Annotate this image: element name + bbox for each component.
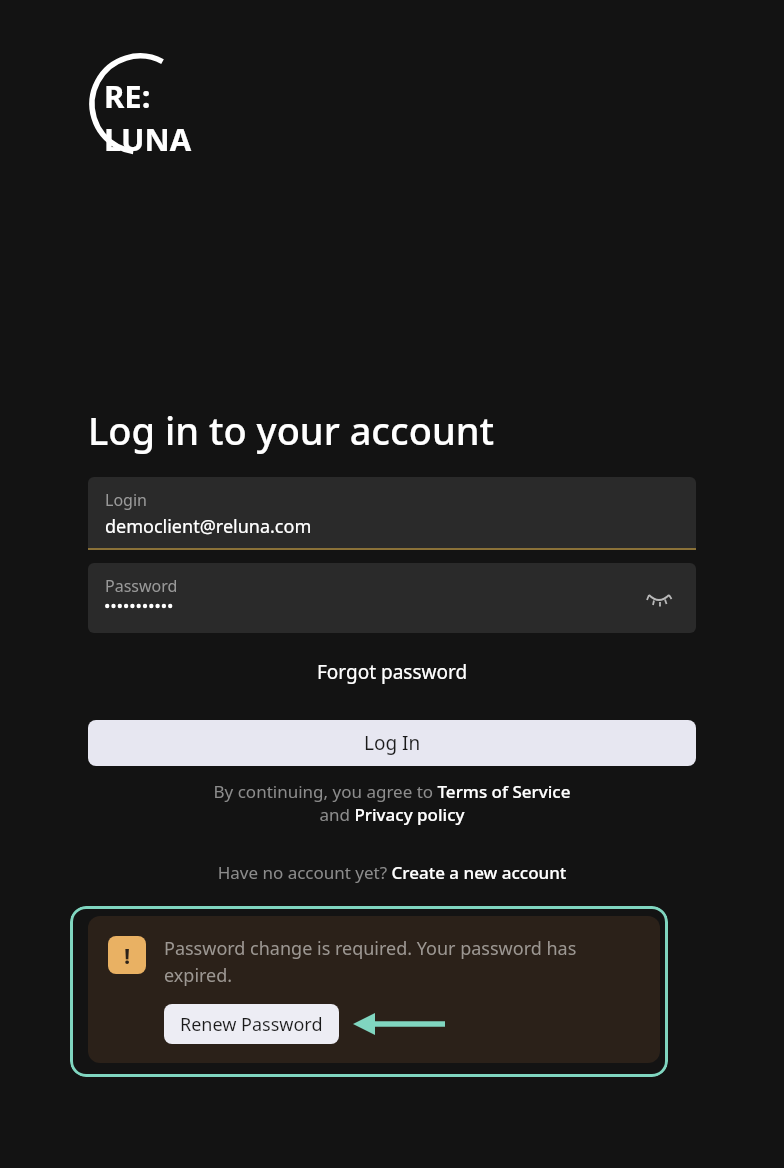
button[interactable]: Renew Password: [164, 1004, 339, 1044]
staticText: Password change is required. Your passwo…: [164, 936, 646, 987]
button[interactable]: By continuing, you agree to Terms of Ser…: [0, 780, 784, 826]
staticText: Login: [105, 489, 147, 511]
staticText: LUNA: [104, 118, 192, 160]
staticText: Log in to your account: [88, 404, 495, 456]
staticText: Renew Password: [180, 1012, 323, 1037]
button[interactable]: Show password: [642, 581, 676, 615]
button[interactable]: Log In: [88, 720, 696, 766]
button[interactable]: Login: [88, 477, 696, 550]
staticText: RE:: [104, 75, 151, 117]
staticText: Log In: [364, 730, 421, 756]
staticText: !: [124, 940, 131, 970]
button[interactable]: Forgot password: [309, 657, 476, 687]
button[interactable]: Password: [88, 563, 696, 633]
staticText: Forgot password: [317, 659, 468, 685]
staticText: Password: [105, 575, 178, 597]
button[interactable]: Have no account yet? Create a new accoun…: [0, 861, 784, 884]
staticText: democlient@reluna.com: [105, 514, 312, 539]
